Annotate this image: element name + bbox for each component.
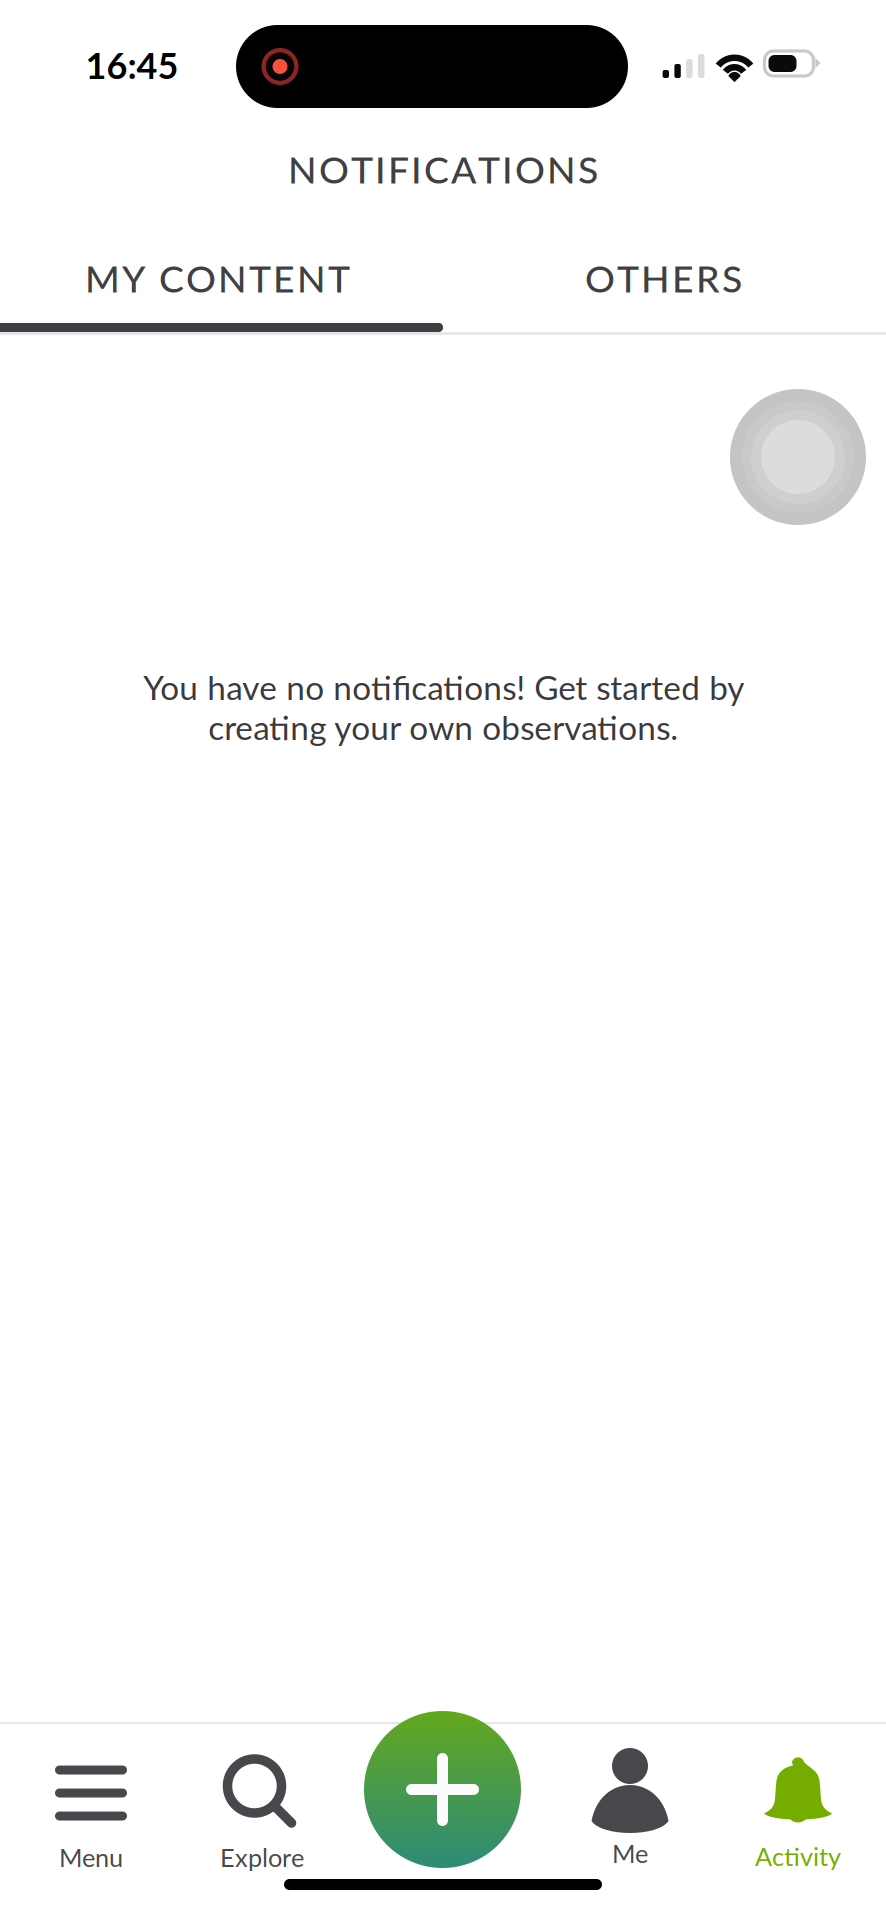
staticText: You have no notifications! Get started b… <box>143 667 743 747</box>
staticText: M Y C O N T E N T <box>85 256 350 300</box>
button[interactable]: M Y C O N T E N T <box>0 230 439 326</box>
button[interactable]: Menu <box>4 1723 178 1918</box>
staticText: Menu <box>59 1842 123 1872</box>
button[interactable]: Activity <box>711 1723 885 1918</box>
button[interactable]: O T H E R S <box>442 230 885 326</box>
staticText: 16:45 <box>85 43 178 87</box>
staticText: N O T I F I C A T I O N S <box>288 147 598 191</box>
button[interactable]: Explore <box>175 1723 349 1918</box>
staticText: Activity <box>755 1841 841 1871</box>
button[interactable]: Me <box>543 1723 717 1918</box>
staticText: O T H E R S <box>585 256 742 300</box>
button[interactable]: Add observation <box>364 1711 521 1868</box>
staticText: Me <box>612 1838 648 1868</box>
staticText: Explore <box>220 1842 304 1872</box>
